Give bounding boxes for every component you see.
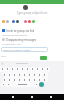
staticText: Disappearing messages — [6, 38, 37, 42]
button[interactable]: key — [5, 67, 10, 72]
button[interactable]: key — [34, 82, 39, 87]
button[interactable]: key — [35, 67, 40, 72]
button[interactable]: key — [12, 82, 34, 87]
button[interactable]: key — [8, 77, 13, 82]
button[interactable]: key — [10, 67, 15, 72]
staticText: Invite to group via link — [6, 29, 35, 33]
button[interactable]: Give this subject a name — [1, 47, 48, 52]
staticText: suggestion — [16, 62, 28, 65]
button[interactable]: key — [33, 72, 38, 77]
staticText: Type group subject here — [0, 11, 64, 15]
button[interactable]: key — [3, 77, 8, 82]
button[interactable]: key — [20, 67, 25, 72]
button[interactable]: key — [3, 72, 8, 77]
button[interactable]: Group photo — [23, 5, 28, 10]
button[interactable]: key — [43, 77, 48, 82]
staticText: 0/25 — [1, 55, 6, 58]
button[interactable]: Next — [40, 56, 47, 60]
button[interactable]: key — [28, 72, 33, 77]
button[interactable]: Enter — [39, 82, 44, 87]
button[interactable]: key — [23, 72, 28, 77]
button[interactable]: key — [23, 77, 28, 82]
button[interactable]: key — [43, 72, 48, 77]
button[interactable]: key — [13, 72, 18, 77]
button[interactable]: key — [18, 72, 23, 77]
button[interactable]: key — [28, 77, 33, 82]
button[interactable]: key — [13, 77, 18, 82]
button[interactable]: Disappearing messages — [0, 37, 64, 46]
button[interactable]: key — [0, 67, 5, 72]
button[interactable]: key — [8, 72, 13, 77]
button[interactable]: key — [7, 82, 12, 87]
staticText: Participants: You — [2, 42, 21, 45]
button[interactable]: key — [1, 82, 7, 87]
staticText: Add group description — [2, 33, 28, 36]
button[interactable]: key — [15, 67, 20, 72]
button[interactable]: key — [25, 67, 30, 72]
button[interactable]: key — [30, 67, 35, 72]
button[interactable]: key — [40, 67, 45, 72]
button[interactable]: Invite to group via link — [0, 28, 64, 37]
button[interactable]: key — [45, 67, 50, 72]
button[interactable]: key — [38, 72, 43, 77]
button[interactable]: key — [33, 77, 38, 82]
button[interactable]: Search — [1, 62, 4, 65]
staticText: Give this subject a name — [3, 48, 31, 51]
button[interactable]: key — [18, 77, 23, 82]
button[interactable]: key — [38, 77, 43, 82]
